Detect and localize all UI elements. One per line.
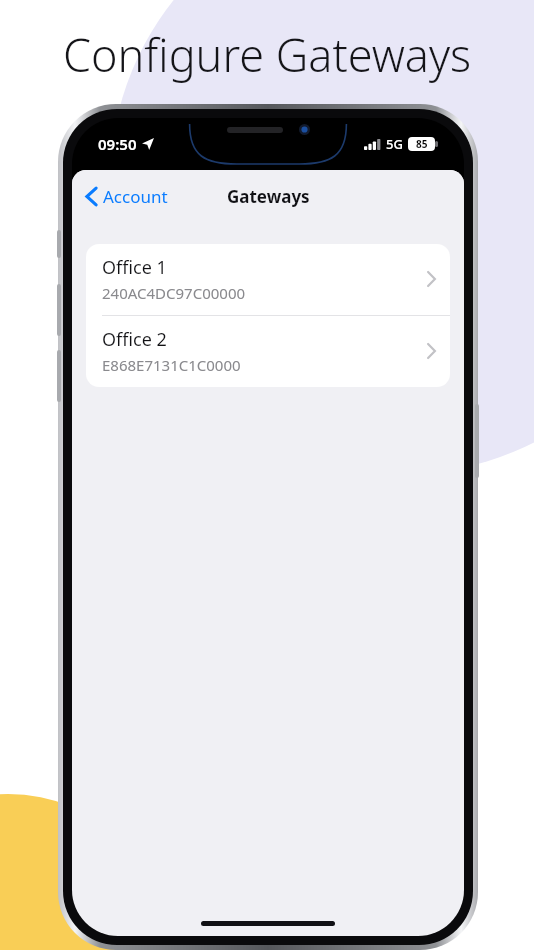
staticText: E868E7131C1C0000: [102, 355, 241, 375]
staticText: 85: [416, 137, 428, 151]
staticText: Office 2: [102, 327, 167, 352]
staticText: 5G: [386, 135, 403, 153]
other: Open Office 1: [427, 271, 436, 287]
staticText: Gateways: [227, 185, 310, 208]
staticText: Account: [103, 185, 168, 208]
button[interactable]: Office 1: [86, 244, 450, 315]
staticText: 240AC4DC97C00000: [102, 283, 246, 303]
staticText: Office 1: [102, 255, 167, 280]
other: Open Office 2: [427, 343, 436, 359]
button[interactable]: Account: [78, 179, 176, 214]
staticText: Configure Gateways: [18, 24, 516, 85]
button[interactable]: Office 2: [86, 316, 450, 387]
staticText: 09:50: [98, 134, 137, 154]
